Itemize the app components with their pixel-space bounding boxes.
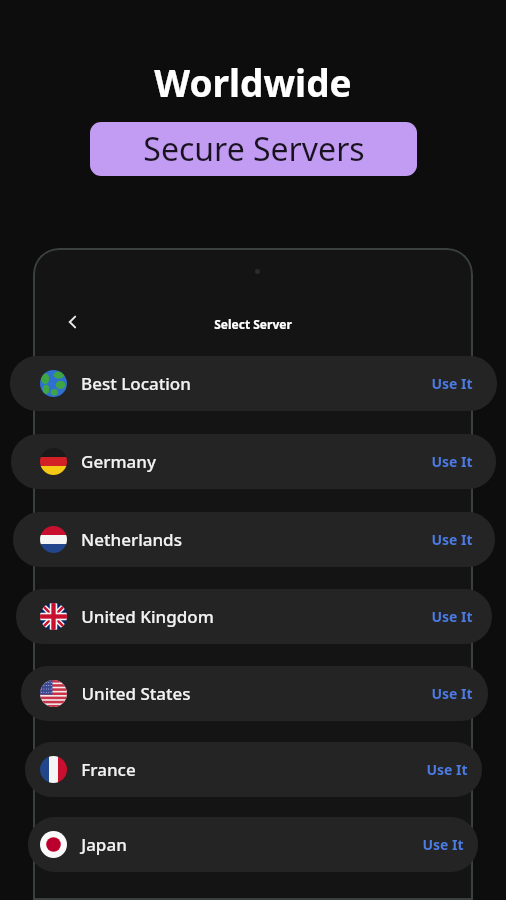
staticText: France — [81, 758, 136, 781]
staticText: Germany — [81, 450, 156, 473]
button[interactable]: Netherlands — [13, 512, 495, 567]
button[interactable]: Use It — [422, 754, 472, 785]
staticText: Japan — [81, 833, 127, 856]
button[interactable]: Use It — [427, 678, 477, 709]
button[interactable]: Use It — [427, 446, 477, 477]
staticText: Use It — [431, 607, 473, 626]
staticText: Worldwide — [154, 57, 352, 107]
staticText: Best Location — [81, 372, 191, 395]
button[interactable]: Use It — [427, 524, 477, 555]
staticText: United States — [81, 682, 191, 705]
button[interactable]: United Kingdom — [16, 589, 492, 644]
staticText: Use It — [431, 374, 473, 393]
staticText: Netherlands — [81, 528, 182, 551]
staticText: Use It — [431, 452, 473, 471]
button[interactable]: Japan — [28, 817, 478, 872]
staticText: Use It — [422, 835, 464, 854]
button[interactable]: Back — [58, 307, 88, 337]
button[interactable]: Germany — [11, 434, 496, 489]
button[interactable]: Best Location — [10, 356, 497, 411]
button[interactable]: Use It — [427, 368, 477, 399]
button[interactable]: Secure Servers — [90, 122, 417, 176]
staticText: Use It — [431, 684, 473, 703]
button[interactable]: United States — [21, 666, 488, 721]
button[interactable]: France — [25, 742, 482, 797]
staticText: United Kingdom — [81, 605, 214, 628]
staticText: Select Server — [214, 316, 292, 332]
staticText: Use It — [426, 760, 468, 779]
staticText: Secure Servers — [143, 127, 365, 171]
staticText: Use It — [431, 530, 473, 549]
button[interactable]: Use It — [427, 601, 477, 632]
button[interactable]: Use It — [418, 829, 468, 860]
